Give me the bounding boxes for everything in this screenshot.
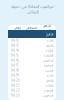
staticText: التاريخ: [45, 32, 53, 36]
staticText: 04:19: [11, 74, 19, 77]
staticText: الأحد: [46, 39, 53, 42]
button[interactable]: أسبوعي: [25, 26, 37, 29]
staticText: الجمعة: [43, 64, 53, 67]
staticText: الإثنين: [45, 44, 53, 47]
staticText: السبت: [44, 69, 53, 72]
staticText: الخميس: [42, 94, 53, 97]
staticText: الرياض: [26, 9, 38, 14]
staticText: الأحد: [46, 74, 53, 77]
staticText: 04:12: [11, 39, 19, 42]
staticText: 04:14: [11, 49, 19, 52]
staticText: الخميس: [42, 59, 53, 62]
staticText: 04:16: [11, 59, 19, 62]
staticText: 04:17: [11, 64, 19, 67]
staticText: الأربعاء: [43, 89, 53, 92]
staticText: شهري: [42, 24, 51, 31]
staticText: 04:18: [11, 69, 19, 72]
button[interactable]: يومي: [13, 26, 20, 29]
staticText: مواقيت الصلاة في مدينة: [10, 4, 53, 9]
staticText: 04:21: [11, 84, 19, 87]
staticText: يومي: [13, 26, 20, 29]
staticText: الثلاثاء: [44, 84, 53, 87]
staticText: الأربعاء: [43, 54, 53, 57]
staticText: أسبوعي: [25, 26, 37, 29]
staticText: 04:23: [11, 94, 20, 97]
staticText: 04:13: [11, 44, 19, 47]
staticText: 04:20: [11, 79, 20, 82]
button[interactable]: شهري: [42, 24, 51, 31]
staticText: 04:22: [11, 89, 20, 92]
staticText: 04:15: [11, 54, 19, 57]
staticText: الثلاثاء: [44, 49, 53, 52]
staticText: الإثنين: [45, 79, 53, 82]
